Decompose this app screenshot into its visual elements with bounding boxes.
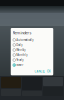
button[interactable]: Yearly <box>11 57 53 62</box>
staticText: Weekly <box>16 48 25 52</box>
staticText: Reminders <box>13 30 32 35</box>
button[interactable]: Never <box>11 63 53 68</box>
button[interactable]: Monthly <box>11 52 53 57</box>
staticText: OK <box>47 70 51 73</box>
staticText: CANCEL <box>34 70 44 73</box>
staticText: Never <box>16 63 23 67</box>
button[interactable]: OK <box>47 70 51 73</box>
button[interactable]: Daily <box>11 42 53 47</box>
button[interactable]: CANCEL <box>34 70 44 73</box>
staticText: Yearly <box>16 58 23 62</box>
staticText: Automatically <box>16 38 33 42</box>
staticText: Daily <box>16 43 22 47</box>
button[interactable]: Automatically <box>11 37 53 42</box>
staticText: Monthly <box>16 53 27 57</box>
button[interactable]: Weekly <box>11 47 53 52</box>
